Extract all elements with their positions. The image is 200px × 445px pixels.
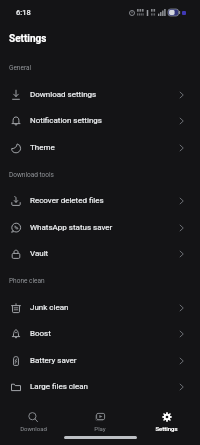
button[interactable]: Settings bbox=[133, 406, 200, 438]
staticText: Boost bbox=[30, 329, 51, 338]
button[interactable]: Download bbox=[0, 406, 66, 438]
button[interactable]: WhatsApp status saver bbox=[0, 214, 200, 241]
staticText: 6:18 bbox=[16, 8, 31, 17]
button[interactable]: Boost bbox=[0, 320, 200, 347]
button[interactable]: Notification settings bbox=[0, 107, 200, 134]
staticText: Notification settings bbox=[30, 116, 102, 125]
staticText: Theme bbox=[30, 143, 55, 152]
staticText: Settings bbox=[155, 425, 178, 432]
staticText: Phone clean bbox=[9, 277, 45, 285]
staticText: Battery saver bbox=[30, 356, 77, 365]
button[interactable]: Vault bbox=[0, 240, 200, 267]
button[interactable]: Play bbox=[66, 406, 133, 438]
button[interactable]: Download settings bbox=[0, 81, 200, 108]
button[interactable]: Junk clean bbox=[0, 294, 200, 321]
button[interactable]: Theme bbox=[0, 134, 200, 161]
button[interactable]: Battery saver bbox=[0, 347, 200, 374]
staticText: Vault bbox=[30, 249, 49, 258]
staticText: General bbox=[9, 64, 32, 72]
staticText: Download settings bbox=[30, 90, 97, 99]
button[interactable]: Recover deleted files bbox=[0, 187, 200, 214]
staticText: Download tools bbox=[9, 171, 54, 179]
staticText: Large files clean bbox=[30, 382, 88, 391]
staticText: Download bbox=[20, 425, 47, 432]
staticText: Recover deleted files bbox=[30, 196, 104, 205]
button[interactable]: Large files clean bbox=[0, 373, 200, 400]
staticText: Settings bbox=[9, 33, 47, 45]
staticText: Junk clean bbox=[30, 303, 69, 312]
staticText: Play bbox=[94, 425, 106, 432]
staticText: WhatsApp status saver bbox=[30, 223, 113, 232]
